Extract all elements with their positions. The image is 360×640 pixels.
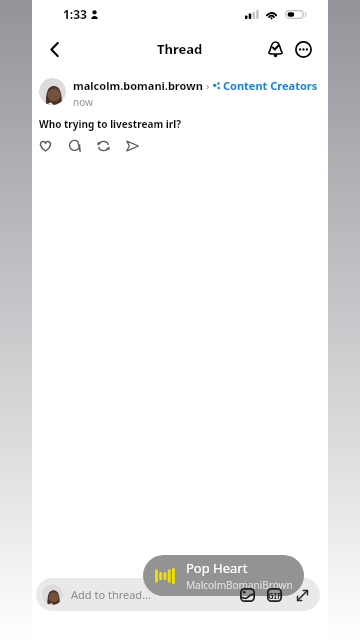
- staticText: Content Creators: [223, 78, 318, 93]
- button[interactable]: Add GIF: [265, 586, 283, 604]
- button[interactable]: Add photo: [238, 586, 256, 604]
- staticText: malcolm.bomani.brown: [73, 78, 203, 93]
- button[interactable]: Notifications: [261, 35, 289, 63]
- button[interactable]: Comment: [60, 133, 89, 159]
- button[interactable]: Profile picture: [39, 78, 66, 105]
- staticText: 1:33: [63, 6, 87, 22]
- button[interactable]: Back: [39, 34, 69, 64]
- staticText: ›: [206, 78, 210, 93]
- button[interactable]: Pop Heart: [143, 555, 304, 596]
- button[interactable]: More options: [289, 35, 317, 63]
- button[interactable]: Add to thread...: [36, 578, 320, 611]
- staticText: now: [73, 95, 93, 109]
- button[interactable]: Repost: [89, 133, 118, 159]
- button[interactable]: Share: [118, 133, 147, 159]
- staticText: Who trying to livestream irl?: [39, 117, 181, 131]
- staticText: MalcolmBomaniBrown: [186, 578, 293, 592]
- button[interactable]: Like: [31, 133, 60, 159]
- staticText: Add to thread...: [71, 587, 151, 602]
- staticText: Thread: [157, 40, 203, 58]
- button[interactable]: Expand: [293, 586, 311, 604]
- staticText: Pop Heart: [186, 559, 248, 577]
- staticText: GIF: [268, 590, 282, 601]
